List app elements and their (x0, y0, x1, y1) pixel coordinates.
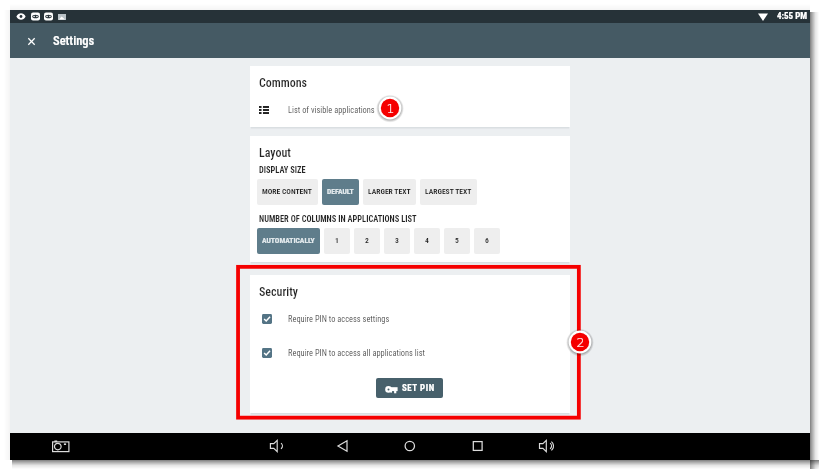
button[interactable]: AUTOMATICALLY (257, 228, 320, 254)
staticText: Settings (53, 33, 95, 48)
staticText: DEFAULT (327, 187, 354, 196)
staticText: List of visible applications (288, 105, 375, 115)
staticText: 2 (576, 335, 585, 350)
button[interactable]: List of visible applications (250, 98, 570, 122)
staticText: Security (259, 285, 299, 299)
staticText: 3 (395, 236, 399, 245)
button[interactable]: Require PIN to access settings (250, 310, 570, 328)
staticText: 6 (485, 236, 489, 245)
staticText: NUMBER OF COLUMNS IN APPLICATIONS LIST (259, 214, 417, 224)
button[interactable]: 1 (324, 228, 350, 254)
button[interactable]: 6 (474, 228, 500, 254)
button[interactable]: 4 (414, 228, 440, 254)
button[interactable]: LARGEST TEXT (420, 179, 477, 205)
button[interactable]: 2 (354, 228, 380, 254)
button[interactable]: Require PIN to access all applications l… (250, 344, 570, 362)
staticText: MORE CONTENT (262, 187, 313, 196)
button[interactable]: LARGER TEXT (363, 179, 416, 205)
button[interactable]: 5 (444, 228, 470, 254)
button[interactable]: Close (21, 31, 42, 52)
button[interactable]: 3 (384, 228, 410, 254)
button[interactable]: SET PIN (376, 378, 443, 398)
staticText: 2 (365, 236, 369, 245)
staticText: LARGEST TEXT (425, 187, 472, 196)
staticText: Require PIN to access settings (288, 314, 390, 324)
staticText: Layout (259, 146, 291, 160)
staticText: Commons (259, 76, 308, 90)
staticText: SET PIN (402, 383, 435, 393)
staticText: 4 (425, 236, 429, 245)
staticText: 4:55 PM (777, 11, 808, 22)
staticText: 5 (455, 236, 459, 245)
button[interactable]: DEFAULT (322, 179, 359, 205)
staticText: 1 (335, 236, 339, 245)
staticText: Require PIN to access all applications l… (288, 348, 426, 358)
staticText: AUTOMATICALLY (262, 236, 315, 245)
staticText: 1 (386, 101, 395, 116)
staticText: DISPLAY SIZE (259, 165, 306, 175)
staticText: LARGER TEXT (368, 187, 411, 196)
button[interactable]: MORE CONTENT (257, 179, 318, 205)
